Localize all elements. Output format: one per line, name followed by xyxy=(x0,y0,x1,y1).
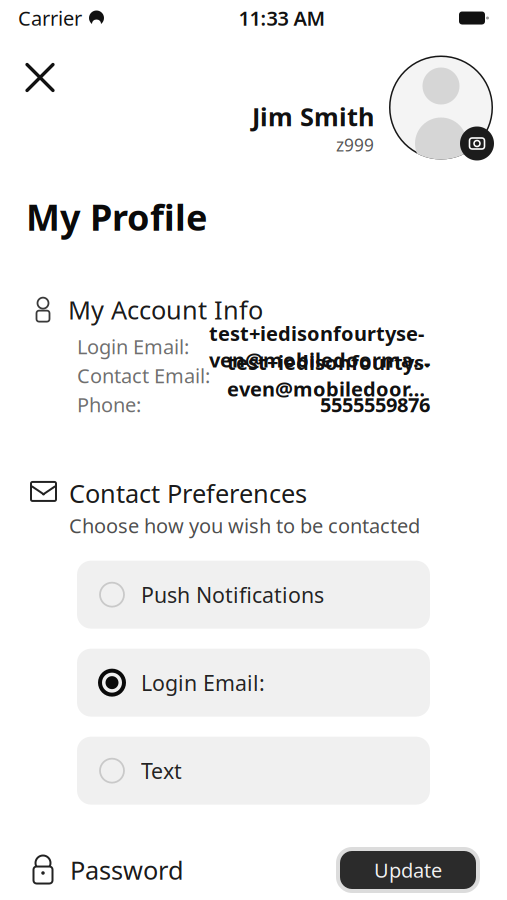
button[interactable]: Change profile photo xyxy=(386,51,496,163)
staticText: My Profile xyxy=(26,193,207,241)
staticText: test+iedisonfourtyseven@mobiledoor… xyxy=(227,349,430,402)
staticText: Login Email: xyxy=(141,668,265,697)
staticText: Text xyxy=(141,756,182,785)
staticText: Phone: xyxy=(77,391,141,418)
button[interactable]: Update xyxy=(336,847,480,893)
staticText: Password xyxy=(70,853,184,887)
staticText: My Account Info xyxy=(68,293,263,326)
staticText: 11:33 AM xyxy=(238,5,325,31)
staticText: Carrier xyxy=(18,5,82,31)
staticText: Choose how you wish to be contacted xyxy=(69,512,420,539)
staticText: Push Notifications xyxy=(141,580,324,609)
staticText: Contact Email: xyxy=(77,362,210,389)
staticText: Contact Preferences xyxy=(69,476,307,510)
button[interactable]: Close xyxy=(0,31,56,101)
button[interactable]: Text xyxy=(77,737,430,805)
staticText: test+iedisonfourtyseven@mobiledoorma… xyxy=(209,320,430,373)
staticText: z999 xyxy=(336,133,374,156)
button[interactable]: Login Email: xyxy=(77,649,430,717)
staticText: Jim Smith xyxy=(252,99,374,133)
staticText: Login Email: xyxy=(77,333,189,360)
button[interactable]: Push Notifications xyxy=(77,561,430,629)
staticText: Update xyxy=(374,857,442,883)
staticText: 5555559876 xyxy=(320,391,430,418)
